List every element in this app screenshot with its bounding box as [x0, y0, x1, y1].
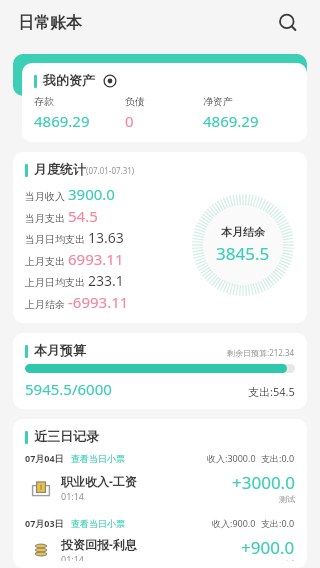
staticText: 3845.5 [216, 242, 270, 265]
staticText: 近三日记录 [34, 428, 99, 444]
staticText: 本月结余 [221, 225, 265, 239]
staticText: -6993.11 [68, 292, 129, 312]
button[interactable]: 本月预算 [13, 333, 307, 409]
staticText: 01:14 [61, 553, 85, 561]
staticText: +900.0 [241, 536, 295, 559]
staticText: 54.5 [68, 206, 98, 226]
button[interactable]: Toggle visibility [102, 73, 117, 88]
staticText: 6993.11 [68, 249, 124, 269]
staticText: 上月日均支出 [25, 275, 88, 289]
staticText: 0 [125, 111, 134, 131]
staticText: 我的资产 [43, 72, 95, 88]
staticText: 01:14 [61, 490, 85, 502]
staticText: 当月日均支出 [25, 232, 88, 246]
staticText: 支出:54.5 [248, 384, 295, 399]
staticText: 存款 [34, 95, 54, 108]
staticText: 4869.29 [34, 111, 90, 131]
staticText: 上月支出 [25, 254, 68, 268]
staticText: 负债 [125, 95, 145, 108]
staticText: 职业收入-工资 [61, 473, 137, 489]
staticText: 07月04日 [25, 452, 64, 464]
staticText: +3000.0 [232, 471, 295, 494]
button[interactable]: 查看当日小票 [71, 453, 125, 464]
staticText: 上月结余 [25, 297, 68, 311]
staticText: 查看当日小票 [71, 518, 125, 529]
staticText: 5945.5/6000 [25, 379, 112, 399]
staticText: 支出:0.0 [261, 452, 295, 464]
staticText: 支出:0.0 [261, 517, 295, 529]
staticText: 测试 [279, 494, 295, 504]
button[interactable]: 查看当日小票 [71, 518, 125, 529]
staticText: 当月支出 [25, 211, 68, 225]
staticText: (07.01-07.31) [86, 165, 135, 176]
staticText: 日常账本 [18, 13, 82, 33]
staticText: 净资产 [203, 95, 233, 108]
staticText: 13.63 [88, 228, 124, 247]
button[interactable]: Search [274, 9, 302, 37]
staticText: 月度统计 [34, 161, 86, 177]
staticText: 剩余日预算:212.34 [227, 347, 295, 358]
staticText: 收入:900.0 [212, 517, 256, 529]
button[interactable]: 投资回报-利息 [25, 529, 295, 568]
staticText: 07月03日 [25, 517, 64, 529]
staticText: 收入:3000.0 [207, 452, 256, 464]
button[interactable]: 职业收入-工资 [25, 464, 295, 511]
staticText: 4869.29 [203, 111, 259, 131]
staticText: 测试 [279, 559, 295, 561]
staticText: 3900.0 [68, 184, 115, 204]
staticText: 查看当日小票 [71, 453, 125, 464]
staticText: 当月收入 [25, 189, 68, 203]
staticText: 233.1 [88, 271, 124, 290]
staticText: 投资回报-利息 [61, 536, 137, 552]
staticText: 本月预算 [34, 342, 86, 358]
